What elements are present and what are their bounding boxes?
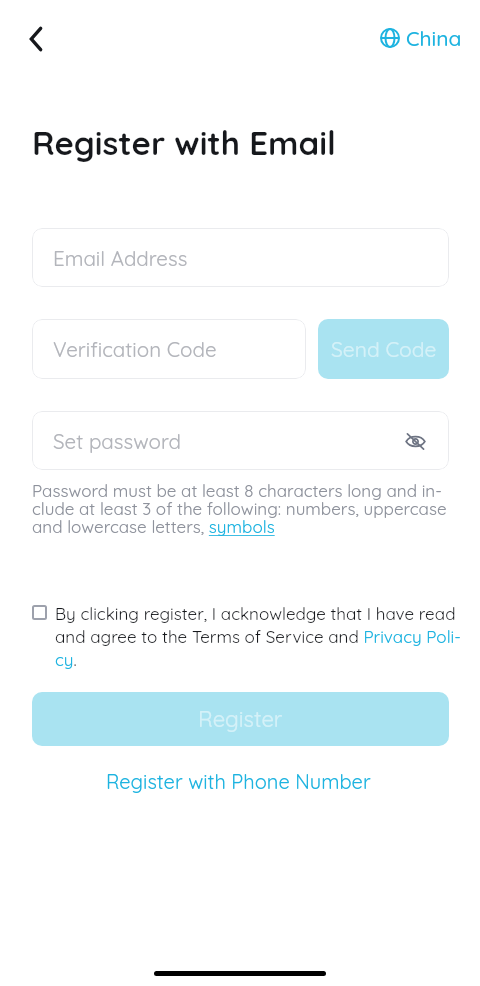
button[interactable]: Email Address — [32, 228, 449, 287]
staticText: Set password — [53, 428, 181, 454]
staticText: Password must be at least 8 characters l… — [32, 480, 447, 538]
button[interactable]: Register with Phone Number — [96, 765, 381, 798]
staticText: Verification Code — [53, 336, 217, 362]
staticText: Email Address — [53, 245, 188, 271]
button[interactable]: Agree to the terms — [32, 605, 47, 620]
button[interactable]: Show password — [394, 420, 436, 462]
staticText: Register with Email — [32, 122, 336, 163]
button[interactable]: Register — [32, 692, 449, 746]
staticText: By clicking register, I acknowledge that… — [55, 603, 461, 671]
staticText: Send Code — [331, 336, 437, 362]
button[interactable]: Set password — [32, 411, 449, 470]
staticText: China — [406, 25, 462, 51]
button[interactable]: Verification Code — [32, 319, 306, 379]
button[interactable]: Back — [13, 16, 59, 62]
button[interactable]: China — [380, 21, 462, 55]
staticText: Register — [198, 705, 283, 733]
button[interactable]: Send Code — [318, 319, 449, 379]
